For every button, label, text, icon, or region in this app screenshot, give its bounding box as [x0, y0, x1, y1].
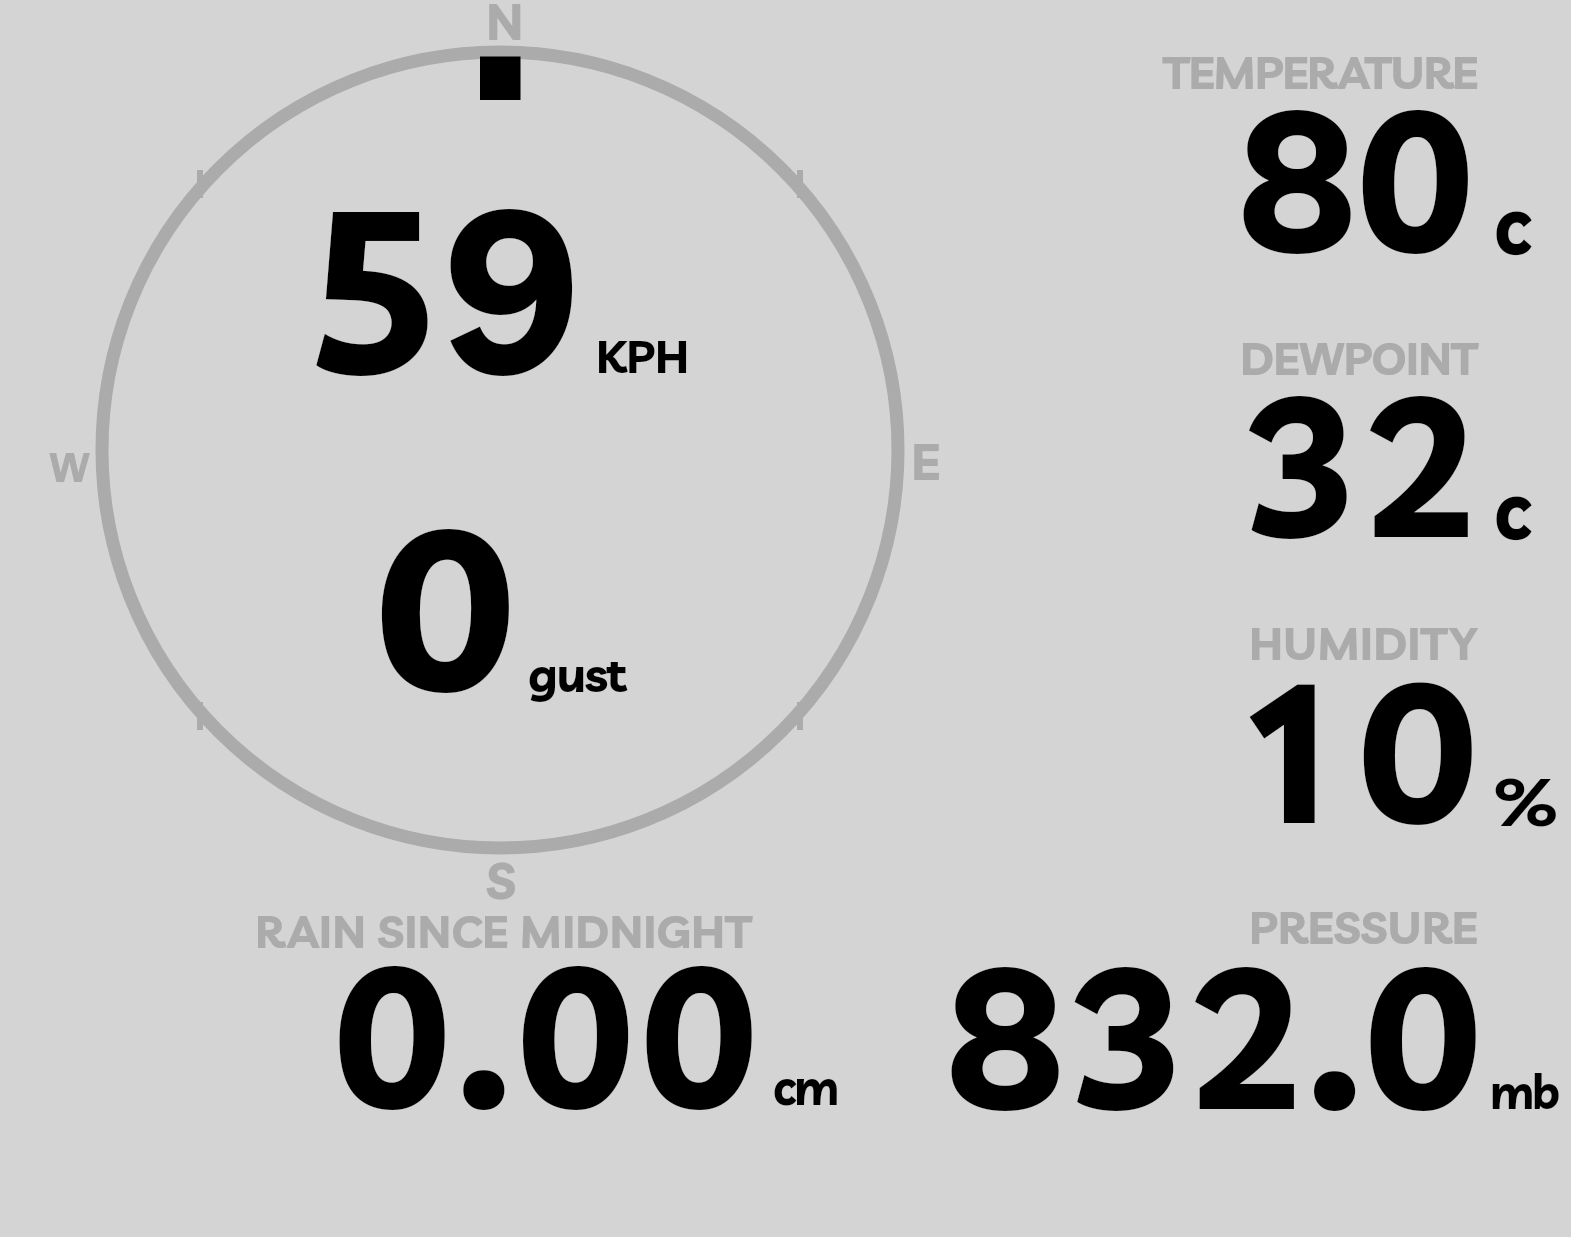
staticText: 59	[304, 145, 588, 431]
staticText: 80	[1238, 54, 1475, 301]
staticText: E	[911, 430, 940, 493]
staticText: W	[49, 442, 90, 492]
staticText: 32	[1241, 341, 1483, 586]
staticText: RAIN SINCE MIDNIGHT	[255, 903, 752, 959]
button[interactable]: Rain since midnight 0.00 cm	[180, 895, 880, 1125]
staticText: 832.0	[946, 911, 1485, 1158]
staticText: DEWPOINT	[1240, 330, 1477, 386]
staticText: %	[1493, 761, 1560, 843]
button[interactable]: Wind compass, 59 KPH, gust 0, from north	[96, 46, 904, 854]
button[interactable]: Humidity 10 percent	[1140, 605, 1571, 835]
staticText: mb	[1490, 1060, 1559, 1121]
staticText: cm	[773, 1054, 838, 1118]
staticText: KPH	[596, 328, 690, 384]
staticText: c	[1494, 171, 1532, 275]
staticText: 0.00	[333, 910, 764, 1157]
staticText: 10	[1251, 627, 1508, 872]
staticText: c	[1494, 456, 1532, 560]
staticText: PRESSURE	[1249, 899, 1478, 955]
staticText: N	[486, 0, 524, 53]
staticText: 0	[374, 465, 517, 747]
staticText: HUMIDITY	[1249, 615, 1478, 671]
button[interactable]: Temperature 80 C	[1140, 40, 1571, 270]
button[interactable]: Pressure 832.0 mb	[900, 895, 1571, 1125]
staticText: S	[486, 849, 516, 912]
staticText: TEMPERATURE	[1163, 44, 1477, 100]
staticText: gust	[528, 644, 626, 704]
button[interactable]: Dewpoint 32 C	[1140, 320, 1571, 550]
